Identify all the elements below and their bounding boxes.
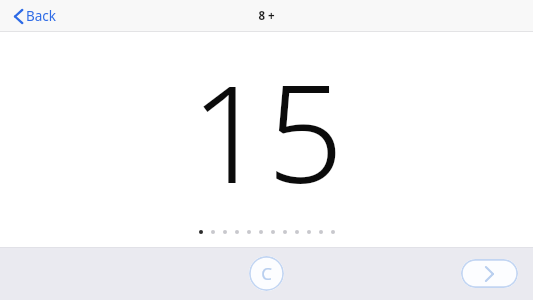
staticText: 15 xyxy=(190,40,344,223)
button[interactable]: Clear xyxy=(249,256,284,291)
button[interactable]: Back xyxy=(0,0,71,32)
staticText: C xyxy=(261,262,272,285)
button[interactable]: Next xyxy=(461,259,518,288)
staticText: 8 + xyxy=(258,8,275,24)
staticText: Back xyxy=(26,7,57,25)
